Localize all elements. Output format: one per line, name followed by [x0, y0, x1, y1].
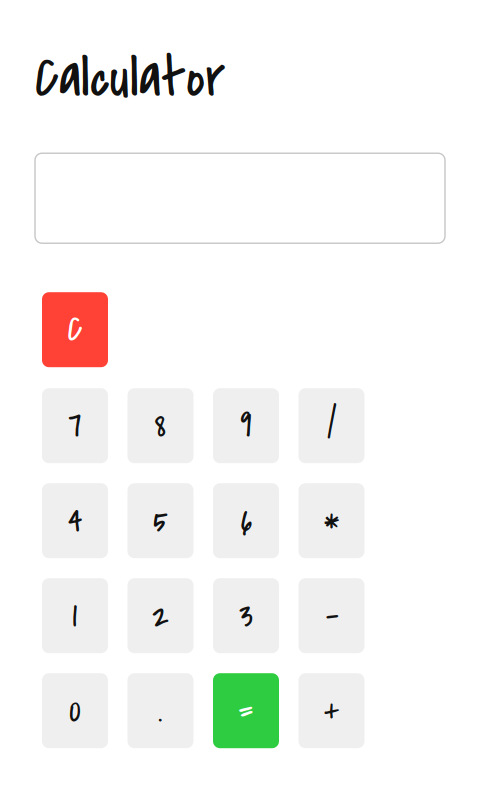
staticText: 3 [239, 591, 253, 640]
button[interactable]: 7 [42, 388, 108, 463]
staticText: 5 [153, 496, 168, 545]
button[interactable]: * [298, 483, 364, 558]
staticText: = [238, 686, 253, 735]
button[interactable]: 6 [213, 483, 279, 558]
staticText: * [324, 496, 339, 545]
button[interactable]: - [298, 578, 364, 653]
button[interactable]: 1 [42, 578, 108, 653]
staticText: / [327, 401, 336, 450]
staticText: 8 [154, 401, 166, 450]
button[interactable]: 4 [42, 483, 108, 558]
staticText: 2 [152, 591, 169, 640]
staticText: Calculator [35, 40, 225, 117]
button[interactable]: 2 [127, 578, 193, 653]
button[interactable]: 3 [213, 578, 279, 653]
staticText: 1 [72, 591, 77, 640]
button[interactable]: . [127, 673, 193, 748]
button[interactable]: C [42, 292, 108, 367]
staticText: 4 [68, 496, 82, 545]
button[interactable]: = [213, 673, 279, 748]
button[interactable]: / [298, 388, 364, 463]
staticText: . [158, 686, 163, 735]
staticText: 7 [68, 401, 81, 450]
button[interactable]: 0 [42, 673, 108, 748]
button[interactable]: + [298, 673, 364, 748]
staticText: 6 [240, 496, 251, 545]
button[interactable]: 5 [127, 483, 193, 558]
button[interactable]: 8 [127, 388, 193, 463]
button[interactable]: 9 [213, 388, 279, 463]
staticText: - [324, 591, 338, 640]
staticText: + [324, 686, 339, 735]
staticText: 0 [69, 686, 81, 735]
staticText: 9 [240, 401, 251, 450]
staticText: C [67, 305, 82, 354]
